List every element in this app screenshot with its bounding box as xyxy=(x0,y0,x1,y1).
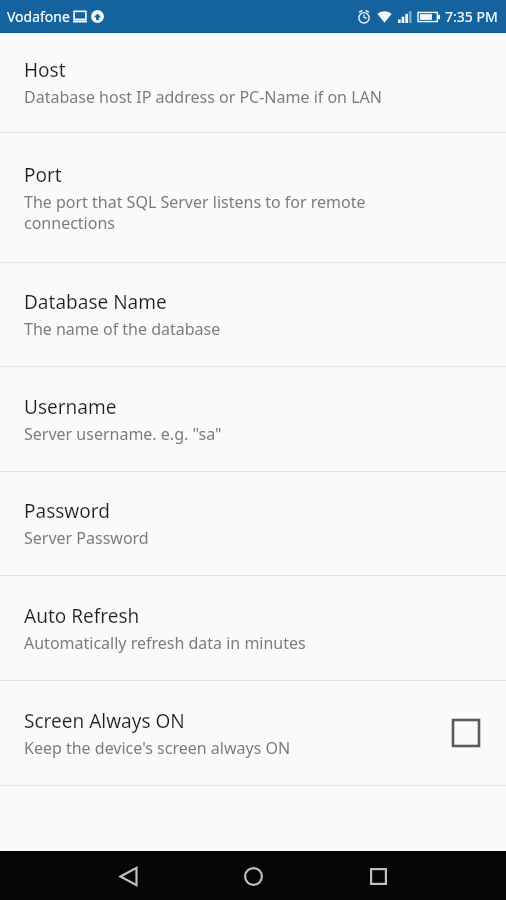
staticText: The port that SQL Server listens to for … xyxy=(24,191,366,234)
staticText: Database host IP address or PC-Name if o… xyxy=(24,86,382,108)
button[interactable]: Screen Always ON checkbox xyxy=(446,713,486,753)
staticText: Password xyxy=(24,498,110,524)
staticText: Database Name xyxy=(24,289,167,315)
staticText: 7:35 PM xyxy=(445,7,498,26)
staticText: Host xyxy=(24,57,66,83)
staticText: Port xyxy=(24,162,62,188)
staticText: Keep the device's screen always ON xyxy=(24,737,291,759)
staticText: Server Password xyxy=(24,527,149,549)
staticText: Username xyxy=(24,394,117,420)
button[interactable]: Screen Always ON xyxy=(0,681,506,785)
button[interactable]: Back xyxy=(104,852,152,900)
button[interactable]: Password xyxy=(0,472,506,575)
staticText: The name of the database xyxy=(24,318,221,340)
staticText: Server username. e.g. "sa" xyxy=(24,423,222,445)
button[interactable]: Recent apps xyxy=(354,852,402,900)
button[interactable]: Port xyxy=(0,133,506,262)
button[interactable]: Database Name xyxy=(0,263,506,366)
button[interactable]: Auto Refresh xyxy=(0,576,506,680)
staticText: Auto Refresh xyxy=(24,603,140,629)
button[interactable]: Home xyxy=(229,852,277,900)
staticText: Automatically refresh data in minutes xyxy=(24,632,306,654)
staticText: Screen Always ON xyxy=(24,708,185,734)
button[interactable]: Host xyxy=(0,33,506,132)
button[interactable]: Username xyxy=(0,367,506,471)
staticText: Vodafone xyxy=(7,7,70,26)
